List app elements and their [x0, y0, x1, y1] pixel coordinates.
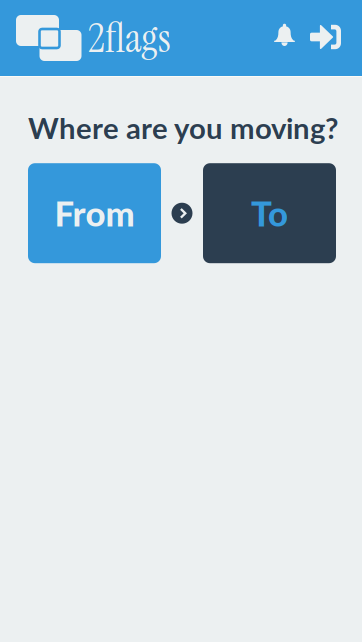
staticText: Where are you moving?: [28, 110, 338, 145]
button[interactable]: 2flags home: [0, 11, 171, 65]
staticText: From: [54, 192, 134, 234]
button[interactable]: From: [28, 163, 161, 263]
staticText: 2flags: [88, 11, 171, 65]
staticText: To: [251, 192, 288, 234]
button[interactable]: To: [203, 163, 336, 263]
button[interactable]: Notifications: [265, 19, 302, 57]
button[interactable]: Sign in: [302, 17, 349, 58]
